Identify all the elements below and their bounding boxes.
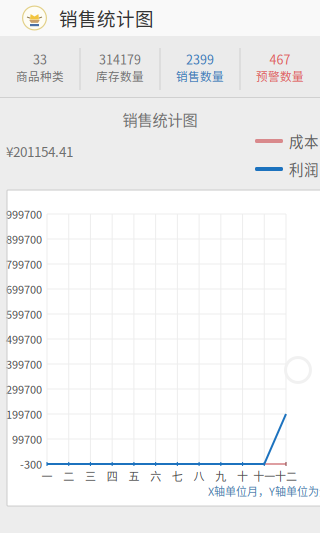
staticText: 799700	[6, 256, 42, 272]
staticText: 三	[85, 468, 96, 484]
staticText: 预警数量	[256, 68, 304, 84]
staticText: 九	[215, 468, 226, 484]
staticText: 199700	[6, 406, 42, 422]
staticText: 599700	[6, 306, 42, 322]
staticText: 一	[41, 468, 52, 484]
staticText: 五	[128, 468, 139, 484]
staticText: 899700	[6, 231, 42, 247]
staticText: 四	[107, 468, 118, 484]
staticText: 十一	[253, 468, 275, 484]
staticText: 十	[237, 468, 248, 484]
staticText: 299700	[6, 381, 42, 397]
button[interactable]: 2399	[160, 36, 240, 97]
staticText: 库存数量	[96, 68, 144, 84]
staticText: 十二	[275, 468, 297, 484]
staticText: 八	[194, 468, 205, 484]
staticText: 销售统计图	[59, 5, 154, 31]
staticText: 七	[172, 468, 183, 484]
staticText: 399700	[6, 356, 42, 372]
staticText: -300	[20, 456, 42, 472]
staticText: 销售统计图	[122, 108, 197, 130]
staticText: 699700	[6, 281, 42, 297]
staticText: 商品种类	[16, 68, 64, 84]
staticText: 499700	[6, 331, 42, 347]
staticText: X轴单位月，Y轴单位为元	[208, 483, 320, 499]
staticText: 33	[33, 50, 47, 68]
staticText: 467	[269, 50, 290, 68]
staticText: ¥201154.41	[6, 141, 73, 161]
staticText: 2399	[186, 50, 214, 68]
staticText: 999700	[6, 206, 42, 222]
staticText: 六	[150, 468, 161, 484]
button[interactable]: 33	[0, 36, 80, 97]
staticText: 利润	[289, 158, 319, 179]
staticText: 99700	[12, 431, 42, 447]
button[interactable]: 314179	[80, 36, 160, 97]
staticText: 314179	[99, 50, 141, 68]
button[interactable]: 467	[240, 36, 320, 97]
staticText: 成本	[289, 130, 319, 151]
button[interactable]: 销售统计图	[0, 0, 320, 36]
staticText: 二	[63, 468, 74, 484]
staticText: 销售数量	[176, 68, 224, 84]
